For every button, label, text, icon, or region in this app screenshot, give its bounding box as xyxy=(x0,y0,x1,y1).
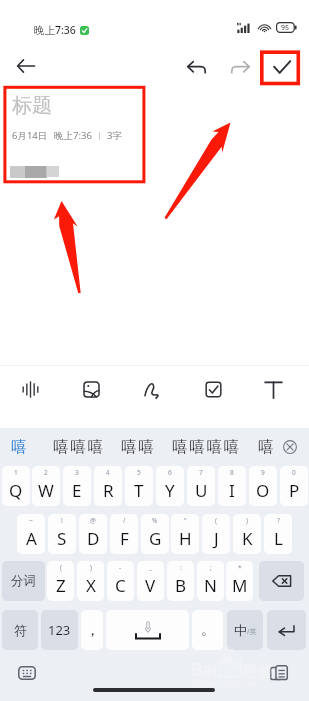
button[interactable]: 5 xyxy=(125,466,153,506)
staticText: jingyan.baidu.com xyxy=(191,678,262,689)
staticText: 9 xyxy=(261,468,265,477)
staticText: 嘻嘻 xyxy=(121,437,156,457)
button[interactable]: ; xyxy=(197,561,224,601)
staticText: ( xyxy=(60,563,62,572)
button[interactable]: ( xyxy=(202,514,230,554)
button[interactable]: ! xyxy=(48,514,76,554)
button[interactable]: / xyxy=(110,514,138,554)
staticText: P xyxy=(289,479,300,502)
button[interactable]: ) xyxy=(77,561,104,601)
button[interactable]: 6 xyxy=(156,466,184,506)
staticText: ? xyxy=(277,516,280,525)
button[interactable]: Enter xyxy=(267,610,306,650)
button[interactable]: 符 xyxy=(2,610,38,650)
staticText: 中 xyxy=(234,622,247,638)
staticText: @ xyxy=(90,516,96,525)
button[interactable]: ) xyxy=(233,514,261,554)
staticText: N xyxy=(204,574,217,597)
staticText: B xyxy=(175,574,187,597)
staticText: 嘻嘻嘻嘻 xyxy=(172,437,241,457)
button[interactable]: 0 xyxy=(280,466,308,506)
button[interactable]: 3 xyxy=(63,466,91,506)
button[interactable]: 分词 xyxy=(2,561,45,601)
staticText: 经验 xyxy=(243,663,273,682)
button[interactable]: 嘻嘻嘻 xyxy=(47,430,111,464)
button[interactable]: Switch keyboard xyxy=(14,660,40,686)
staticText: - xyxy=(119,563,122,572)
button[interactable]: Backspace xyxy=(259,561,304,601)
button[interactable]: _ xyxy=(137,561,164,601)
button[interactable]: : xyxy=(167,561,194,601)
staticText: Z xyxy=(56,574,66,597)
button[interactable]: 嘻嘻 xyxy=(115,430,162,464)
staticText: 符 xyxy=(14,622,27,638)
button[interactable]: 7 xyxy=(187,466,215,506)
staticText: L xyxy=(274,527,283,550)
button[interactable]: 123 xyxy=(41,610,78,650)
staticText: * xyxy=(238,563,242,572)
staticText: R xyxy=(103,479,114,502)
button[interactable]: 。 xyxy=(192,610,223,650)
button[interactable]: Voice xyxy=(4,367,56,411)
button[interactable]: ( xyxy=(47,561,74,601)
staticText: 。 xyxy=(201,621,215,639)
button[interactable]: 嘻 xyxy=(4,430,35,464)
staticText: S xyxy=(57,527,67,550)
button[interactable]: Text format xyxy=(247,367,299,411)
staticText: ~ xyxy=(29,516,33,525)
button[interactable]: 中 xyxy=(227,610,263,650)
staticText: 嘻 xyxy=(258,437,276,457)
button[interactable]: Redo xyxy=(224,51,256,83)
staticText: I xyxy=(229,479,235,502)
staticText: 嘻嘻嘻 xyxy=(53,437,105,457)
button[interactable]: ~ xyxy=(17,514,45,554)
staticText: 8 xyxy=(230,468,234,477)
staticText: ) xyxy=(90,563,92,572)
staticText: ) xyxy=(246,516,248,525)
staticText: 1 xyxy=(14,468,18,477)
staticText: X xyxy=(86,574,96,597)
staticText: V xyxy=(145,574,156,597)
staticText: O xyxy=(256,479,270,502)
staticText: 晚上7:36 xyxy=(54,129,92,142)
staticText: 6月14日 xyxy=(12,129,48,142)
button[interactable]: 2 xyxy=(32,466,60,506)
button[interactable]: 8 xyxy=(218,466,246,506)
button[interactable]: @ xyxy=(79,514,107,554)
button[interactable]: * xyxy=(226,561,253,601)
button[interactable]: % xyxy=(141,514,169,554)
staticText: 6 xyxy=(168,468,172,477)
button[interactable]: Checklist xyxy=(187,367,239,411)
button[interactable]: Image xyxy=(65,367,117,411)
staticText: M xyxy=(232,574,248,597)
staticText: H xyxy=(179,527,192,550)
staticText: % xyxy=(152,516,158,525)
button[interactable]: " xyxy=(171,514,199,554)
button[interactable]: ? xyxy=(264,514,292,554)
button[interactable]: Clipboard xyxy=(266,660,292,686)
staticText: ， xyxy=(85,621,100,640)
button[interactable]: ， xyxy=(81,610,103,650)
staticText: 0 xyxy=(292,468,296,477)
button[interactable]: Undo xyxy=(180,51,212,83)
staticText: " xyxy=(184,516,187,525)
button[interactable]: Done xyxy=(264,49,300,85)
button[interactable]: 9 xyxy=(249,466,277,506)
staticText: W xyxy=(38,479,54,502)
staticText: K xyxy=(242,527,253,550)
staticText: 嘻 xyxy=(11,437,29,457)
button[interactable]: Space xyxy=(106,610,189,650)
button[interactable]: 嘻嘻嘻嘻 xyxy=(166,430,246,464)
button[interactable]: 1 xyxy=(2,466,30,506)
staticText: Q xyxy=(9,479,23,502)
staticText: / xyxy=(123,516,126,525)
button[interactable]: 嘻 xyxy=(251,430,282,464)
staticText: Y xyxy=(165,479,175,502)
button[interactable]: - xyxy=(107,561,134,601)
button[interactable]: Handwriting xyxy=(126,367,178,411)
button[interactable]: 4 xyxy=(94,466,122,506)
staticText: ( xyxy=(215,516,217,525)
button[interactable]: Dismiss candidates xyxy=(277,434,303,460)
button[interactable]: Back xyxy=(9,49,43,83)
